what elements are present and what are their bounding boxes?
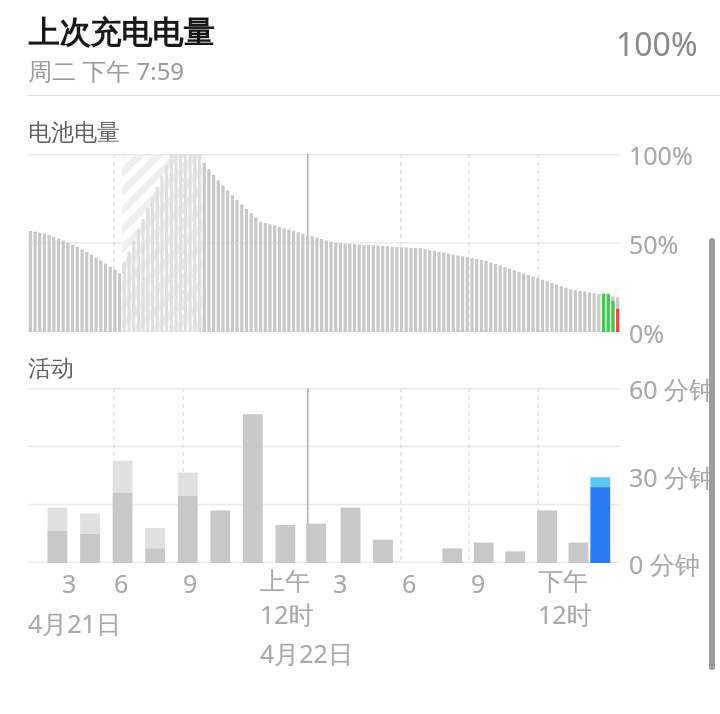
staticText: 上次充电电量: [28, 13, 214, 52]
button[interactable]: 电池电量图表: [28, 154, 620, 332]
button[interactable]: 上次充电电量: [28, 13, 698, 87]
staticText: 30 分钟: [629, 460, 715, 494]
staticText: 电池电量: [28, 118, 120, 147]
staticText: 3: [62, 566, 77, 600]
staticText: 6: [402, 566, 417, 600]
staticText: 12时: [538, 597, 592, 631]
staticText: 4月21日: [28, 606, 121, 640]
staticText: 9: [183, 566, 198, 600]
staticText: 60 分钟: [629, 372, 715, 406]
staticText: 9: [471, 566, 486, 600]
staticText: 6: [114, 566, 129, 600]
staticText: 3: [333, 566, 348, 600]
staticText: 下午: [538, 566, 588, 597]
staticText: 周二 下午 7:59: [28, 54, 185, 87]
staticText: 100%: [629, 138, 693, 172]
staticText: 0%: [629, 316, 665, 350]
staticText: 活动: [28, 354, 74, 383]
staticText: 上午: [260, 566, 310, 597]
staticText: 0 分钟: [629, 547, 700, 581]
button[interactable]: 活动图表: [28, 388, 620, 563]
staticText: 4月22日: [260, 636, 353, 670]
staticText: 12时: [260, 597, 314, 631]
staticText: 50%: [629, 227, 679, 261]
staticText: 100%: [616, 22, 698, 66]
